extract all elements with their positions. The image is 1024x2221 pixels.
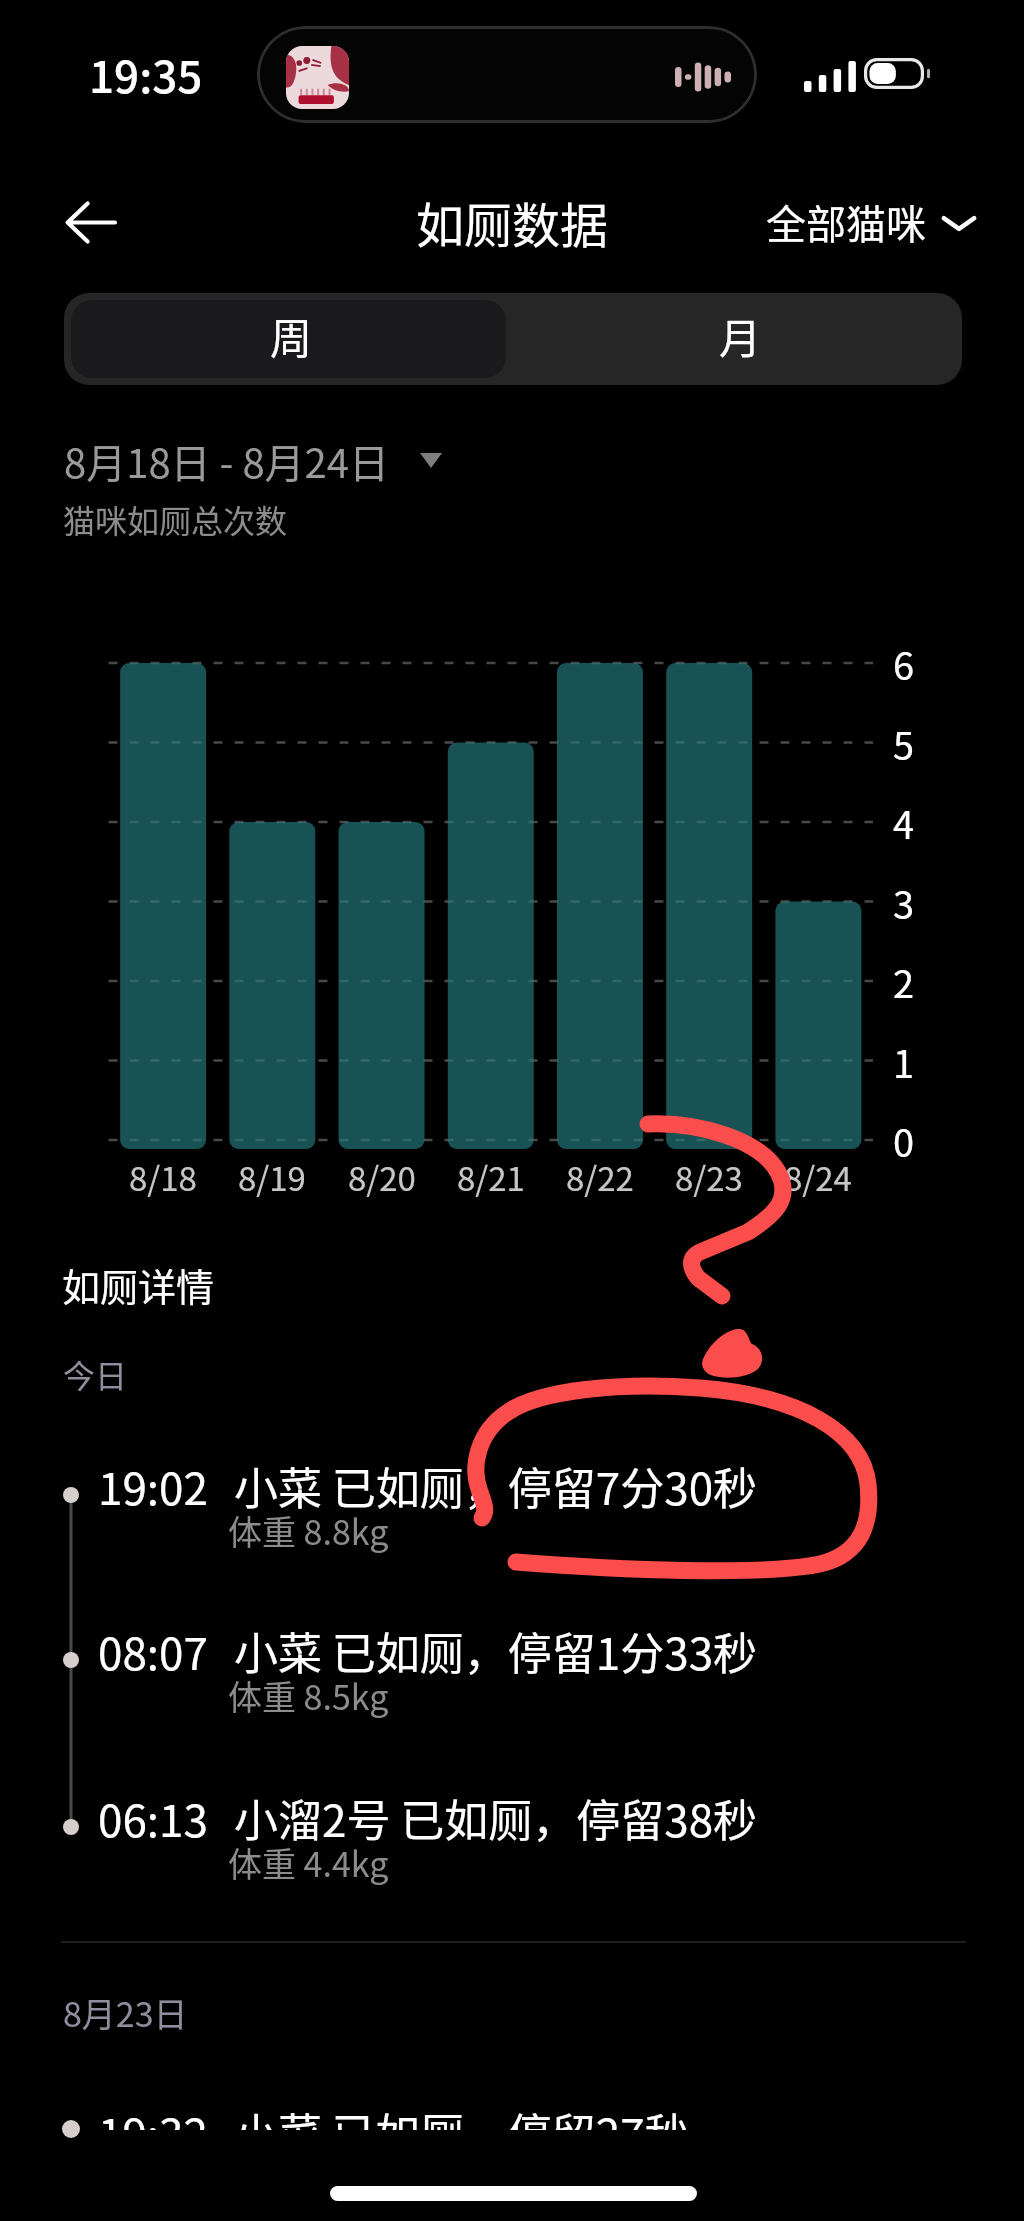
staticText: 8/19 [238,1153,306,1201]
staticText: 3 [893,875,915,930]
button[interactable]: 月 [513,293,962,385]
button[interactable]: 08:07 [0,1619,1024,1737]
staticText: 月 [719,305,762,366]
staticText: 06:13 [98,1786,208,1850]
staticText: 8/24 [784,1153,852,1201]
staticText: 猫咪如厕总次数 [63,496,288,542]
staticText: 8月18日 - 8月24日 [64,432,389,490]
staticText: 体重 8.8kg [228,1506,389,1555]
staticText: 8/20 [348,1153,416,1201]
staticText: 6 [893,636,915,691]
staticText: 08:07 [98,1619,208,1683]
staticText: 2 [893,954,915,1009]
staticText: 19:35 [89,42,203,106]
staticText: 8月23日 [63,1988,188,2037]
staticText: 0 [893,1113,915,1168]
staticText: 8/22 [566,1153,634,1201]
staticText: 小菜 已如厕，停留1分33秒 [234,1619,758,1683]
staticText: 周 [270,305,313,366]
staticText: 体重 8.5kg [228,1671,389,1720]
staticText: 19:32 [98,2109,208,2130]
staticText: 8/21 [457,1153,525,1201]
staticText: 今日 [63,1351,128,1397]
staticText: 19:02 [98,1454,208,1518]
staticText: 4 [893,795,915,850]
staticText: 8/23 [675,1153,743,1201]
staticText: 体重 4.4kg [228,1838,389,1887]
staticText: 全部猫咪 [766,193,926,251]
staticText: 5 [893,716,915,771]
staticText: 如厕数据 [416,187,609,257]
button[interactable]: 8月18日 - 8月24日 [60,428,447,494]
staticText: 小菜 已如厕，停留7分30秒 [234,1454,758,1518]
staticText: 如厕详情 [62,1257,215,1312]
button[interactable]: 周 [71,300,506,378]
staticText: 小溜2号 已如厕，停留38秒 [234,1786,758,1850]
staticText: 1 [893,1034,915,1089]
staticText: 小菜 已如厕，停留27秒 [234,2109,689,2130]
button[interactable]: 19:02 [0,1454,1024,1572]
button[interactable]: Back [44,178,132,266]
staticText: 8/18 [129,1153,197,1201]
button[interactable]: 06:13 [0,1786,1024,1904]
button[interactable]: 全部猫咪 [756,181,988,263]
